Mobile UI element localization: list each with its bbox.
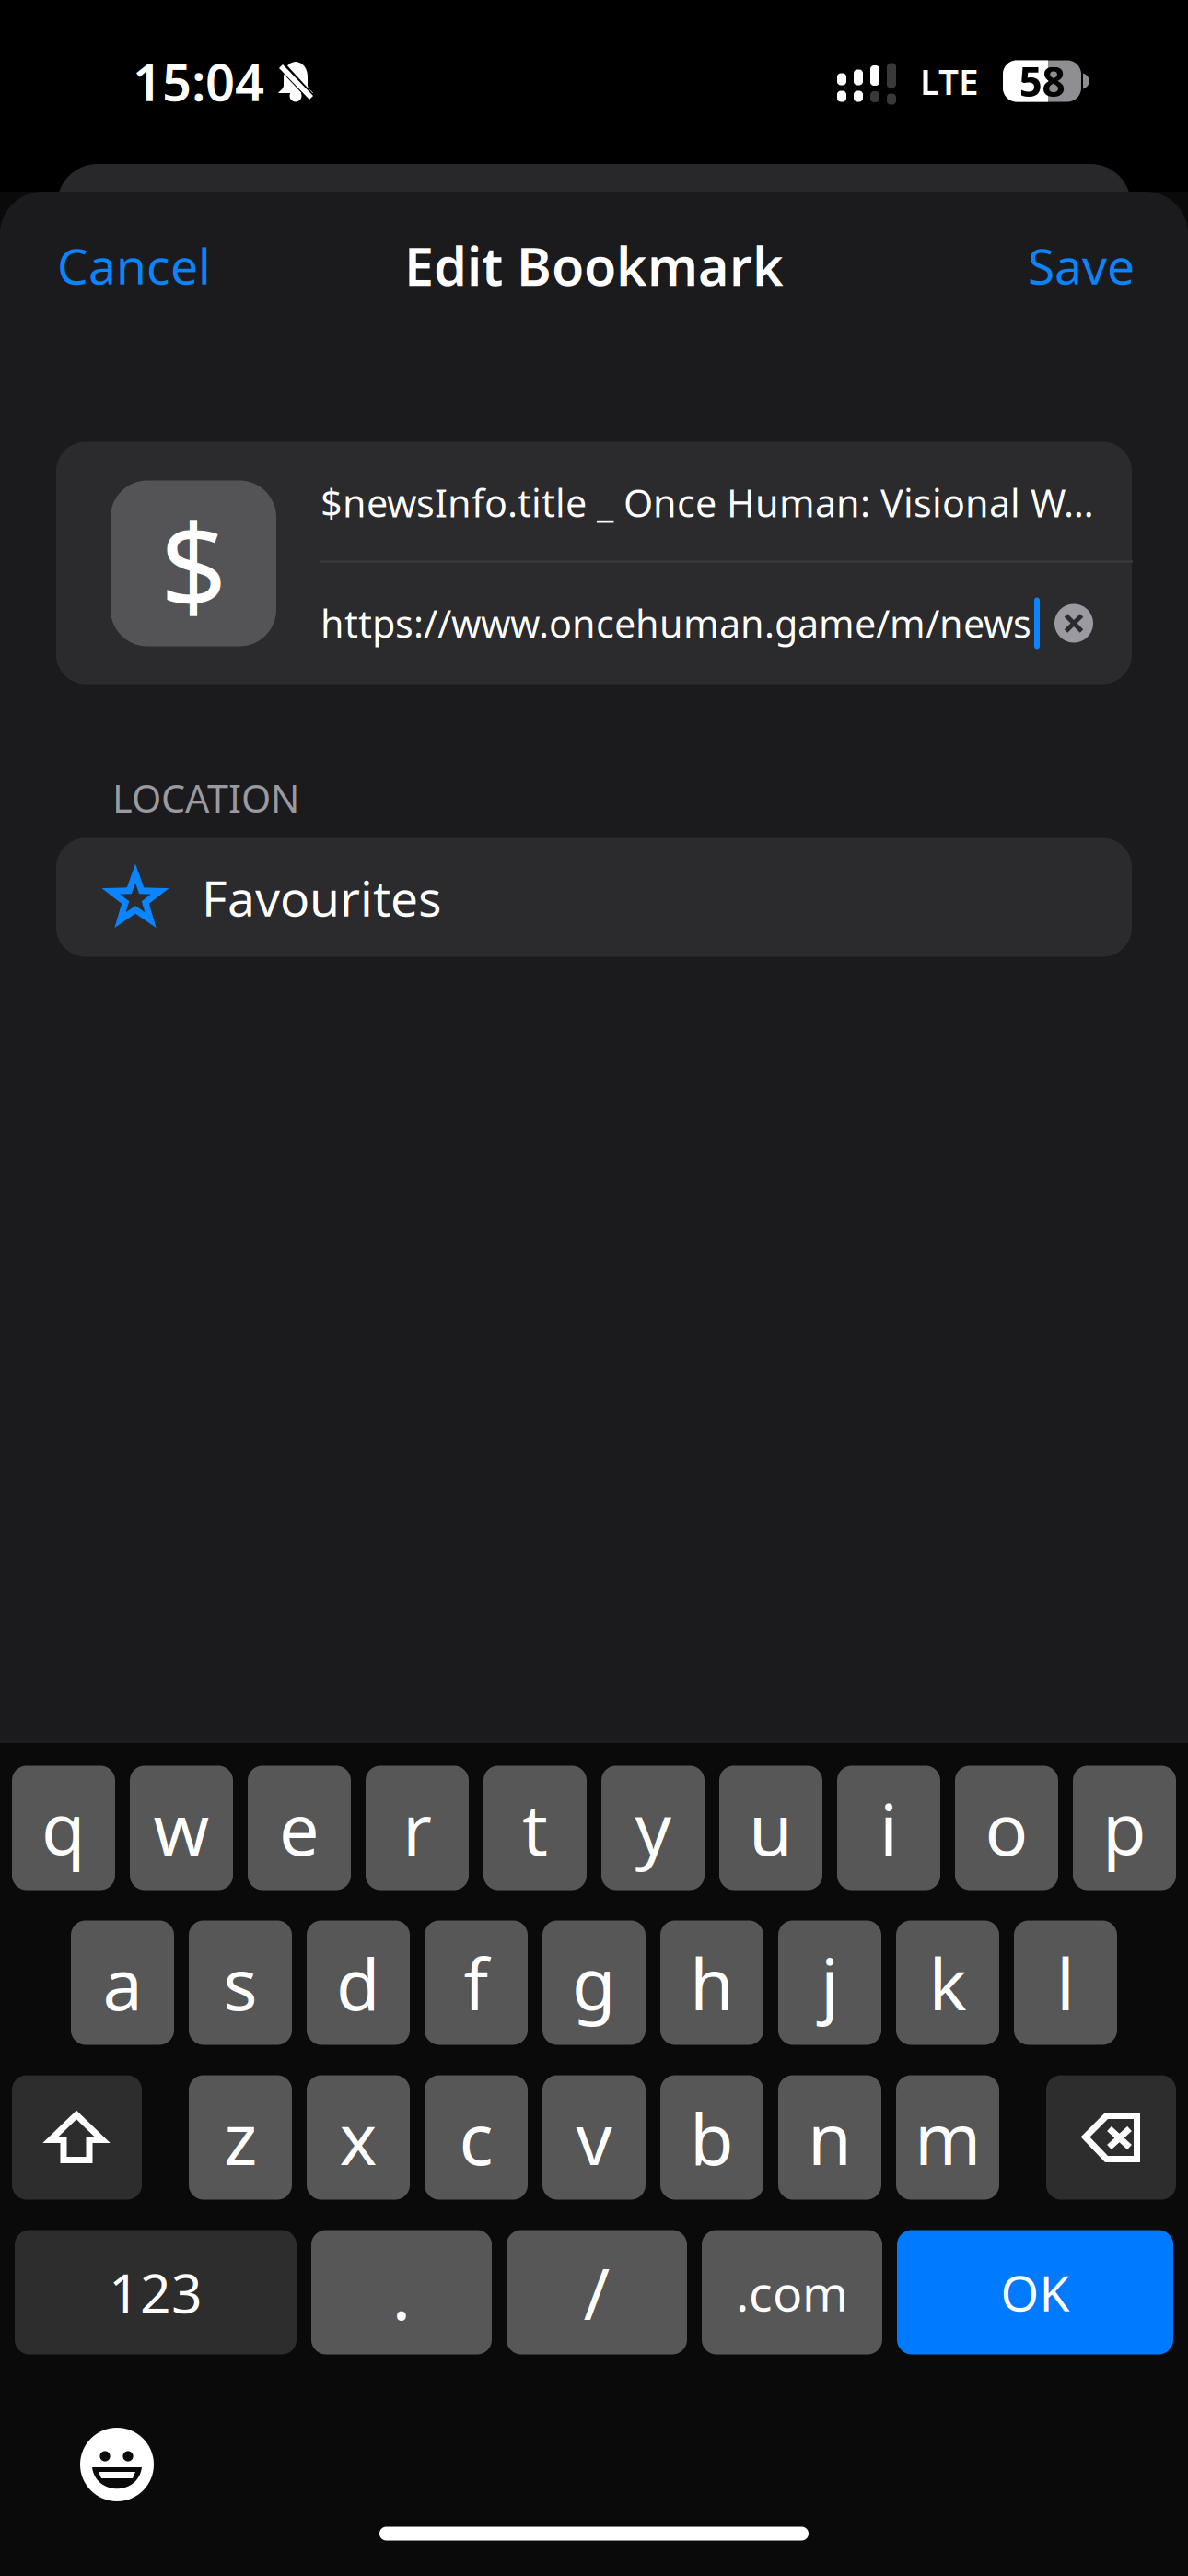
staticText: / [583, 2245, 610, 2340]
staticText: 123 [109, 2256, 203, 2328]
staticText: $ [160, 485, 227, 642]
staticText: u [749, 1781, 793, 1875]
button[interactable]: o [955, 1766, 1058, 1890]
button[interactable]: Clear text [1054, 604, 1093, 643]
button[interactable]: x [307, 2075, 410, 2200]
staticText: OK [1001, 2260, 1070, 2325]
staticText: g [572, 1935, 616, 2030]
staticText: t [522, 1781, 548, 1875]
staticText: https://www.oncehuman.game/m/news [320, 598, 1031, 649]
staticText: i [879, 1781, 898, 1875]
button[interactable]: n [778, 2075, 881, 2200]
button[interactable]: p [1073, 1766, 1176, 1890]
button[interactable]: OK [897, 2230, 1173, 2354]
staticText: m [914, 2090, 981, 2185]
staticText: l [1056, 1935, 1075, 2030]
staticText: Cancel [57, 233, 211, 298]
staticText: s [223, 1935, 257, 2030]
button[interactable]: c [425, 2075, 528, 2200]
staticText: 15:04 [133, 47, 264, 115]
staticText: c [459, 2090, 493, 2185]
staticText: a [103, 1935, 142, 2030]
button[interactable]: Save [1004, 214, 1135, 316]
staticText: Edit Bookmark [404, 230, 784, 300]
button[interactable]: Emoji keyboard [80, 2428, 154, 2501]
button[interactable]: 123 [15, 2230, 297, 2354]
staticText: r [402, 1781, 432, 1875]
button[interactable]: h [660, 1920, 763, 2045]
button[interactable]: g [542, 1920, 646, 2045]
staticText: .com [736, 2260, 848, 2325]
staticText: e [279, 1781, 320, 1875]
button[interactable]: . [311, 2230, 492, 2354]
button[interactable]: f [425, 1920, 528, 2045]
button[interactable]: Cancel [57, 214, 235, 316]
staticText: f [464, 1935, 489, 2030]
staticText: j [821, 1935, 839, 2030]
button[interactable]: Shift [12, 2075, 142, 2200]
button[interactable]: / [507, 2230, 687, 2354]
staticText: q [41, 1781, 86, 1875]
button[interactable]: d [307, 1920, 410, 2045]
staticText: p [1102, 1781, 1147, 1875]
button[interactable]: r [366, 1766, 469, 1890]
staticText: Save [1028, 233, 1135, 298]
button[interactable]: k [896, 1920, 999, 2045]
button[interactable]: v [542, 2075, 646, 2200]
button[interactable]: s [189, 1920, 292, 2045]
staticText: o [985, 1781, 1028, 1875]
staticText: y [635, 1781, 671, 1875]
button[interactable]: l [1014, 1920, 1117, 2045]
button[interactable]: y [601, 1766, 705, 1890]
button[interactable]: i [837, 1766, 940, 1890]
staticText: v [576, 2090, 612, 2185]
staticText: k [929, 1935, 967, 2030]
button[interactable]: Favourites [56, 838, 1132, 957]
button[interactable]: w [130, 1766, 233, 1890]
button[interactable]: Delete [1046, 2075, 1176, 2200]
staticText: $newsInfo.title _ Once Human: Visional W… [320, 477, 1094, 528]
button[interactable]: u [719, 1766, 822, 1890]
staticText: z [224, 2090, 257, 2185]
staticText: n [808, 2090, 852, 2185]
staticText: . [392, 2245, 411, 2340]
button[interactable]: a [71, 1920, 174, 2045]
button[interactable]: z [189, 2075, 292, 2200]
staticText: 58 [1019, 54, 1065, 108]
button[interactable]: j [778, 1920, 881, 2045]
button[interactable]: t [483, 1766, 587, 1890]
staticText: Favourites [202, 865, 442, 930]
staticText: x [339, 2090, 377, 2185]
staticText: b [690, 2090, 734, 2185]
staticText: LTE [920, 57, 979, 105]
button[interactable]: b [660, 2075, 763, 2200]
button[interactable]: .com [702, 2230, 882, 2354]
button[interactable]: m [896, 2075, 999, 2200]
staticText: h [690, 1935, 734, 2030]
staticText: w [153, 1781, 210, 1875]
staticText: LOCATION [112, 773, 299, 823]
button[interactable]: e [248, 1766, 351, 1890]
button[interactable]: q [12, 1766, 115, 1890]
staticText: d [336, 1935, 380, 2030]
